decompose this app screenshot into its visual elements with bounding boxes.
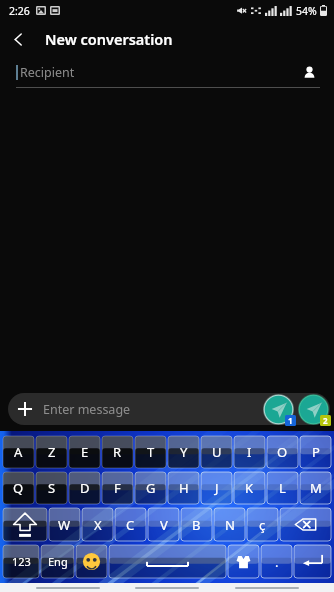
button[interactable]: S (36, 472, 67, 504)
staticText: Q (13, 479, 24, 497)
staticText: P (312, 443, 320, 461)
button[interactable]: E (69, 436, 100, 468)
button[interactable]: Back (0, 21, 36, 57)
button[interactable]: ç (247, 508, 278, 541)
staticText: R (113, 443, 122, 461)
button[interactable]: . (261, 545, 292, 578)
button[interactable]: Navigation (235, 587, 299, 589)
staticText: . (275, 553, 279, 571)
button[interactable]: U (201, 436, 232, 468)
button[interactable]: 123 (3, 545, 39, 578)
staticText: E (81, 443, 89, 461)
button[interactable]: G (135, 472, 166, 504)
button[interactable]: J (201, 472, 232, 504)
button[interactable]: P (300, 436, 331, 468)
button[interactable]: A (3, 436, 34, 468)
button[interactable]: Y (168, 436, 199, 468)
staticText: 54% (296, 4, 317, 18)
button[interactable]: Space (109, 545, 226, 578)
staticText: Enter message (43, 401, 131, 418)
staticText: L (279, 479, 286, 497)
button[interactable]: F (102, 472, 133, 504)
staticText: G (146, 479, 156, 497)
staticText: T (147, 443, 155, 461)
staticText: W (58, 516, 71, 534)
staticText: J (215, 479, 219, 497)
staticText: H (179, 479, 189, 497)
button[interactable]: Pick contact (298, 61, 320, 83)
staticText: V (160, 516, 168, 534)
staticText: Eng (48, 554, 68, 569)
staticText: N (225, 516, 235, 534)
button[interactable]: N (214, 508, 245, 541)
button[interactable]: Enter message (8, 393, 330, 425)
staticText: B (192, 516, 201, 534)
button[interactable]: C (115, 508, 146, 541)
button[interactable]: K (234, 472, 265, 504)
staticText: D (80, 479, 90, 497)
staticText: Recipient (20, 64, 75, 81)
staticText: C (126, 516, 135, 534)
button[interactable]: R (102, 436, 133, 468)
button[interactable]: Shift (3, 508, 47, 541)
button[interactable]: Send with SIM 1 (263, 394, 294, 425)
staticText: 123 (12, 554, 31, 569)
button[interactable]: W (49, 508, 80, 541)
staticText: 2:26 (9, 4, 30, 18)
staticText: K (245, 479, 254, 497)
button[interactable]: X (82, 508, 113, 541)
button[interactable]: Z (36, 436, 67, 468)
button[interactable]: Theme (228, 545, 259, 578)
staticText: X (94, 516, 102, 534)
staticText: 1 (288, 415, 293, 426)
button[interactable]: Navigation (36, 587, 100, 589)
button[interactable]: Eng (41, 545, 74, 578)
staticText: O (277, 443, 288, 461)
button[interactable]: Navigation (135, 587, 199, 589)
staticText: U (212, 443, 222, 461)
staticText: A (14, 443, 23, 461)
button[interactable]: B (181, 508, 212, 541)
button[interactable]: V (148, 508, 179, 541)
button[interactable]: H (168, 472, 199, 504)
staticText: 2 (323, 415, 328, 426)
staticText: M (310, 479, 322, 497)
button[interactable]: I (234, 436, 265, 468)
staticText: S (48, 479, 56, 497)
button[interactable]: Emoji (76, 545, 107, 578)
button[interactable]: Send with SIM 2 (298, 394, 329, 425)
staticText: Z (48, 443, 56, 461)
button[interactable]: T (135, 436, 166, 468)
staticText: F (114, 479, 121, 497)
button[interactable]: L (267, 472, 298, 504)
button[interactable]: Backspace (280, 508, 331, 541)
button[interactable]: M (300, 472, 331, 504)
staticText: I (247, 443, 252, 461)
staticText: Y (180, 443, 188, 461)
staticText: ç (259, 516, 266, 534)
button[interactable]: O (267, 436, 298, 468)
button[interactable]: D (69, 472, 100, 504)
staticText: New conversation (45, 29, 173, 49)
button[interactable]: Q (3, 472, 34, 504)
button[interactable]: Enter (294, 545, 331, 578)
